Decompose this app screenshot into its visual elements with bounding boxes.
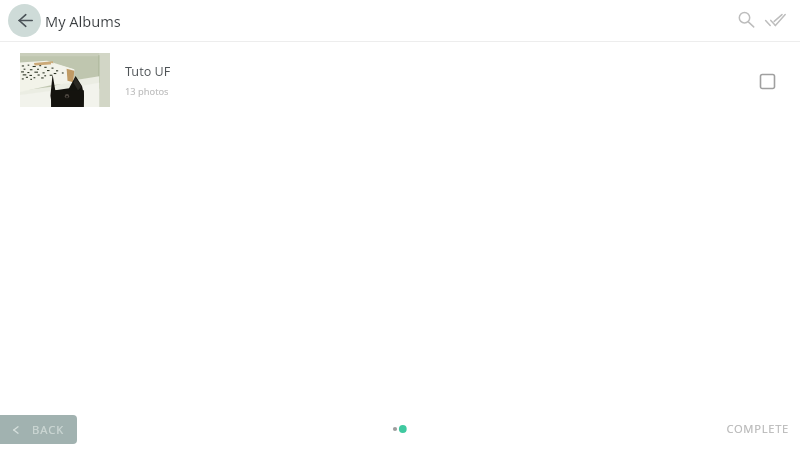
button[interactable]: Tuto UF: [0, 53, 800, 108]
button[interactable]: Select album: [747, 74, 787, 102]
staticText: 13 photos: [125, 85, 169, 98]
staticText: Tuto UF: [125, 63, 171, 80]
button[interactable]: Select all: [761, 5, 789, 33]
button[interactable]: COMPLETE: [715, 406, 800, 450]
staticText: My Albums: [45, 11, 121, 31]
button[interactable]: Back: [8, 4, 41, 37]
button[interactable]: Search: [731, 5, 759, 33]
staticText: BACK: [32, 422, 65, 437]
button[interactable]: BACK: [0, 415, 77, 444]
staticText: COMPLETE: [726, 421, 789, 436]
